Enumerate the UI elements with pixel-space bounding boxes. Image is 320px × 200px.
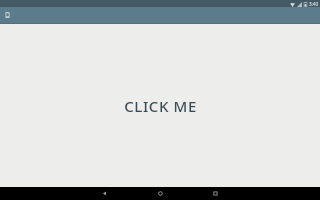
staticText: CLICK ME	[124, 96, 197, 116]
button[interactable]: Home	[154, 187, 167, 200]
button[interactable]: Recents	[209, 187, 222, 200]
button[interactable]: App logo	[2, 10, 12, 20]
button[interactable]: Back	[98, 187, 111, 200]
staticText: 3:40	[309, 1, 318, 7]
button[interactable]: CLICK ME	[114, 90, 207, 122]
